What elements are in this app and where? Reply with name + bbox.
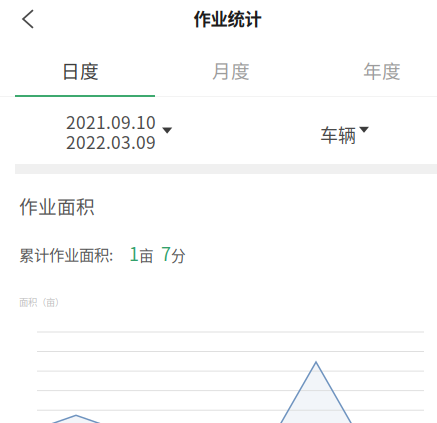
- staticText: 1: [129, 240, 139, 266]
- staticText: 累计作业面积:: [19, 243, 113, 265]
- staticText: 2021.09.10: [66, 109, 156, 134]
- staticText: 亩: [139, 244, 154, 265]
- staticText: 7: [161, 240, 171, 266]
- staticText: 年度: [363, 56, 401, 83]
- button[interactable]: 月度: [161, 49, 301, 91]
- button[interactable]: 日度: [10, 49, 150, 91]
- staticText: 2022.03.09: [66, 129, 156, 154]
- button[interactable]: 车辆: [320, 113, 388, 147]
- staticText: 面积（亩）: [19, 295, 64, 308]
- button[interactable]: 年度: [312, 49, 437, 91]
- button[interactable]: Back: [0, 0, 56, 41]
- staticText: 分: [171, 244, 186, 265]
- staticText: 车辆: [320, 121, 356, 147]
- staticText: 作业面积: [19, 192, 95, 219]
- button[interactable]: 2021.09.10: [66, 105, 184, 151]
- staticText: 月度: [212, 56, 250, 83]
- staticText: 作业统计: [193, 5, 261, 31]
- staticText: 日度: [61, 56, 99, 83]
